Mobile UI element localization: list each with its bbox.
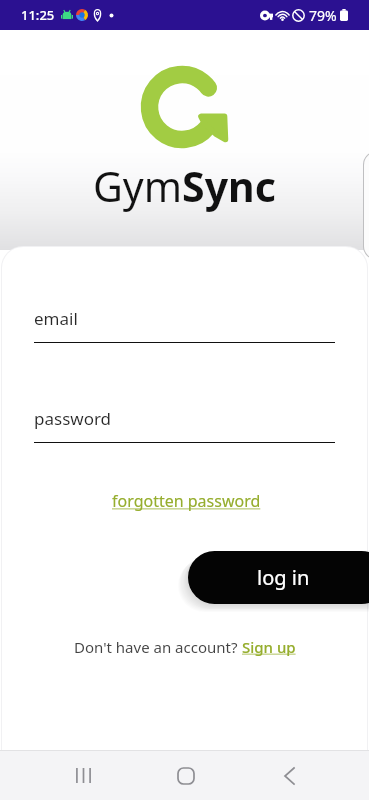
button[interactable]: log in	[188, 551, 369, 604]
button[interactable]: forgotten password	[112, 490, 261, 512]
staticText: 79%	[309, 6, 337, 25]
button[interactable]: Sign up	[242, 637, 296, 657]
button[interactable]: Home	[150, 751, 222, 800]
staticText: password	[34, 407, 112, 430]
staticText: email	[34, 307, 78, 330]
staticText: Don't have an account?	[74, 637, 242, 657]
staticText: GymSync	[93, 158, 276, 214]
button[interactable]: Recent apps	[47, 751, 119, 800]
button[interactable]: Back	[253, 751, 325, 800]
staticText: forgotten password	[112, 490, 261, 512]
staticText: log in	[257, 564, 310, 591]
staticText: Sign up	[242, 637, 296, 657]
staticText: 11:25	[21, 6, 55, 24]
